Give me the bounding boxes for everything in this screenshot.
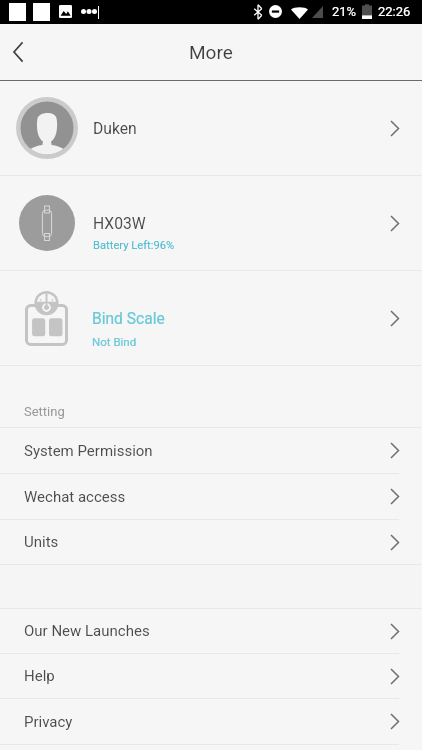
staticText: Units xyxy=(24,533,59,551)
staticText: Bind Scale xyxy=(92,310,165,328)
staticText: Privacy xyxy=(24,713,73,731)
staticText: Wechat access xyxy=(24,488,126,506)
button[interactable]: Privacy xyxy=(0,699,422,744)
staticText: Duken xyxy=(93,119,137,137)
button[interactable]: Help xyxy=(0,654,422,698)
staticText: Not Bind xyxy=(92,335,137,348)
button[interactable]: Back xyxy=(0,24,52,80)
staticText: System Permission xyxy=(24,442,153,460)
button[interactable]: Wechat access xyxy=(0,474,422,519)
button[interactable]: System Permission xyxy=(0,428,422,473)
button[interactable]: HX03W xyxy=(0,176,422,270)
button[interactable]: Duken xyxy=(0,81,422,175)
staticText: Battery Left:96% xyxy=(93,239,175,252)
staticText: Our New Launches xyxy=(24,622,150,640)
staticText: Setting xyxy=(24,404,65,419)
button[interactable]: Units xyxy=(0,520,422,564)
staticText: HX03W xyxy=(93,214,146,232)
staticText: 21% xyxy=(332,4,357,19)
button[interactable]: Our New Launches xyxy=(0,609,422,653)
staticText: Help xyxy=(24,667,55,685)
staticText: More xyxy=(189,41,233,63)
staticText: 22:26 xyxy=(378,4,411,19)
button[interactable]: Bind Scale xyxy=(0,271,422,365)
